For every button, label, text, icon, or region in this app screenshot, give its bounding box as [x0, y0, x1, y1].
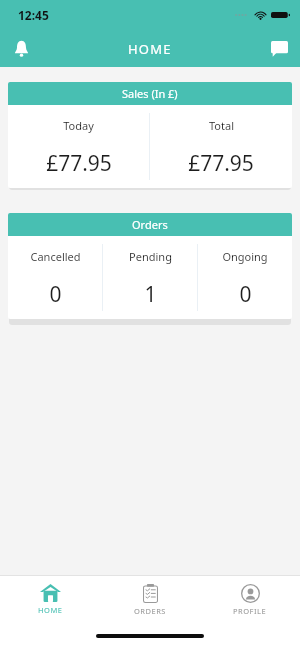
staticText: 12:45 — [18, 7, 49, 23]
button[interactable]: HOME — [0, 576, 100, 623]
staticText: Orders — [132, 217, 168, 232]
staticText: 0 — [49, 280, 62, 309]
staticText: £77.95 — [188, 149, 254, 178]
button[interactable]: PROFILE — [200, 576, 300, 623]
staticText: Total — [209, 118, 234, 133]
staticText: 0 — [239, 280, 252, 309]
button[interactable]: Sales (In £) — [8, 82, 292, 188]
button[interactable]: Messages — [258, 30, 300, 67]
staticText: ORDERS — [134, 606, 166, 616]
staticText: £77.95 — [46, 149, 112, 178]
staticText: 1 — [144, 280, 157, 309]
button[interactable]: Orders — [8, 213, 292, 319]
staticText: HOME — [128, 40, 172, 58]
button[interactable]: ORDERS — [100, 576, 200, 623]
staticText: Cancelled — [30, 249, 81, 264]
staticText: Today — [63, 118, 94, 133]
staticText: Ongoing — [222, 249, 268, 264]
button[interactable]: Notifications — [0, 30, 42, 67]
staticText: Sales (In £) — [122, 86, 178, 101]
staticText: HOME — [38, 605, 63, 615]
staticText: Pending — [129, 249, 172, 264]
staticText: PROFILE — [233, 606, 267, 616]
